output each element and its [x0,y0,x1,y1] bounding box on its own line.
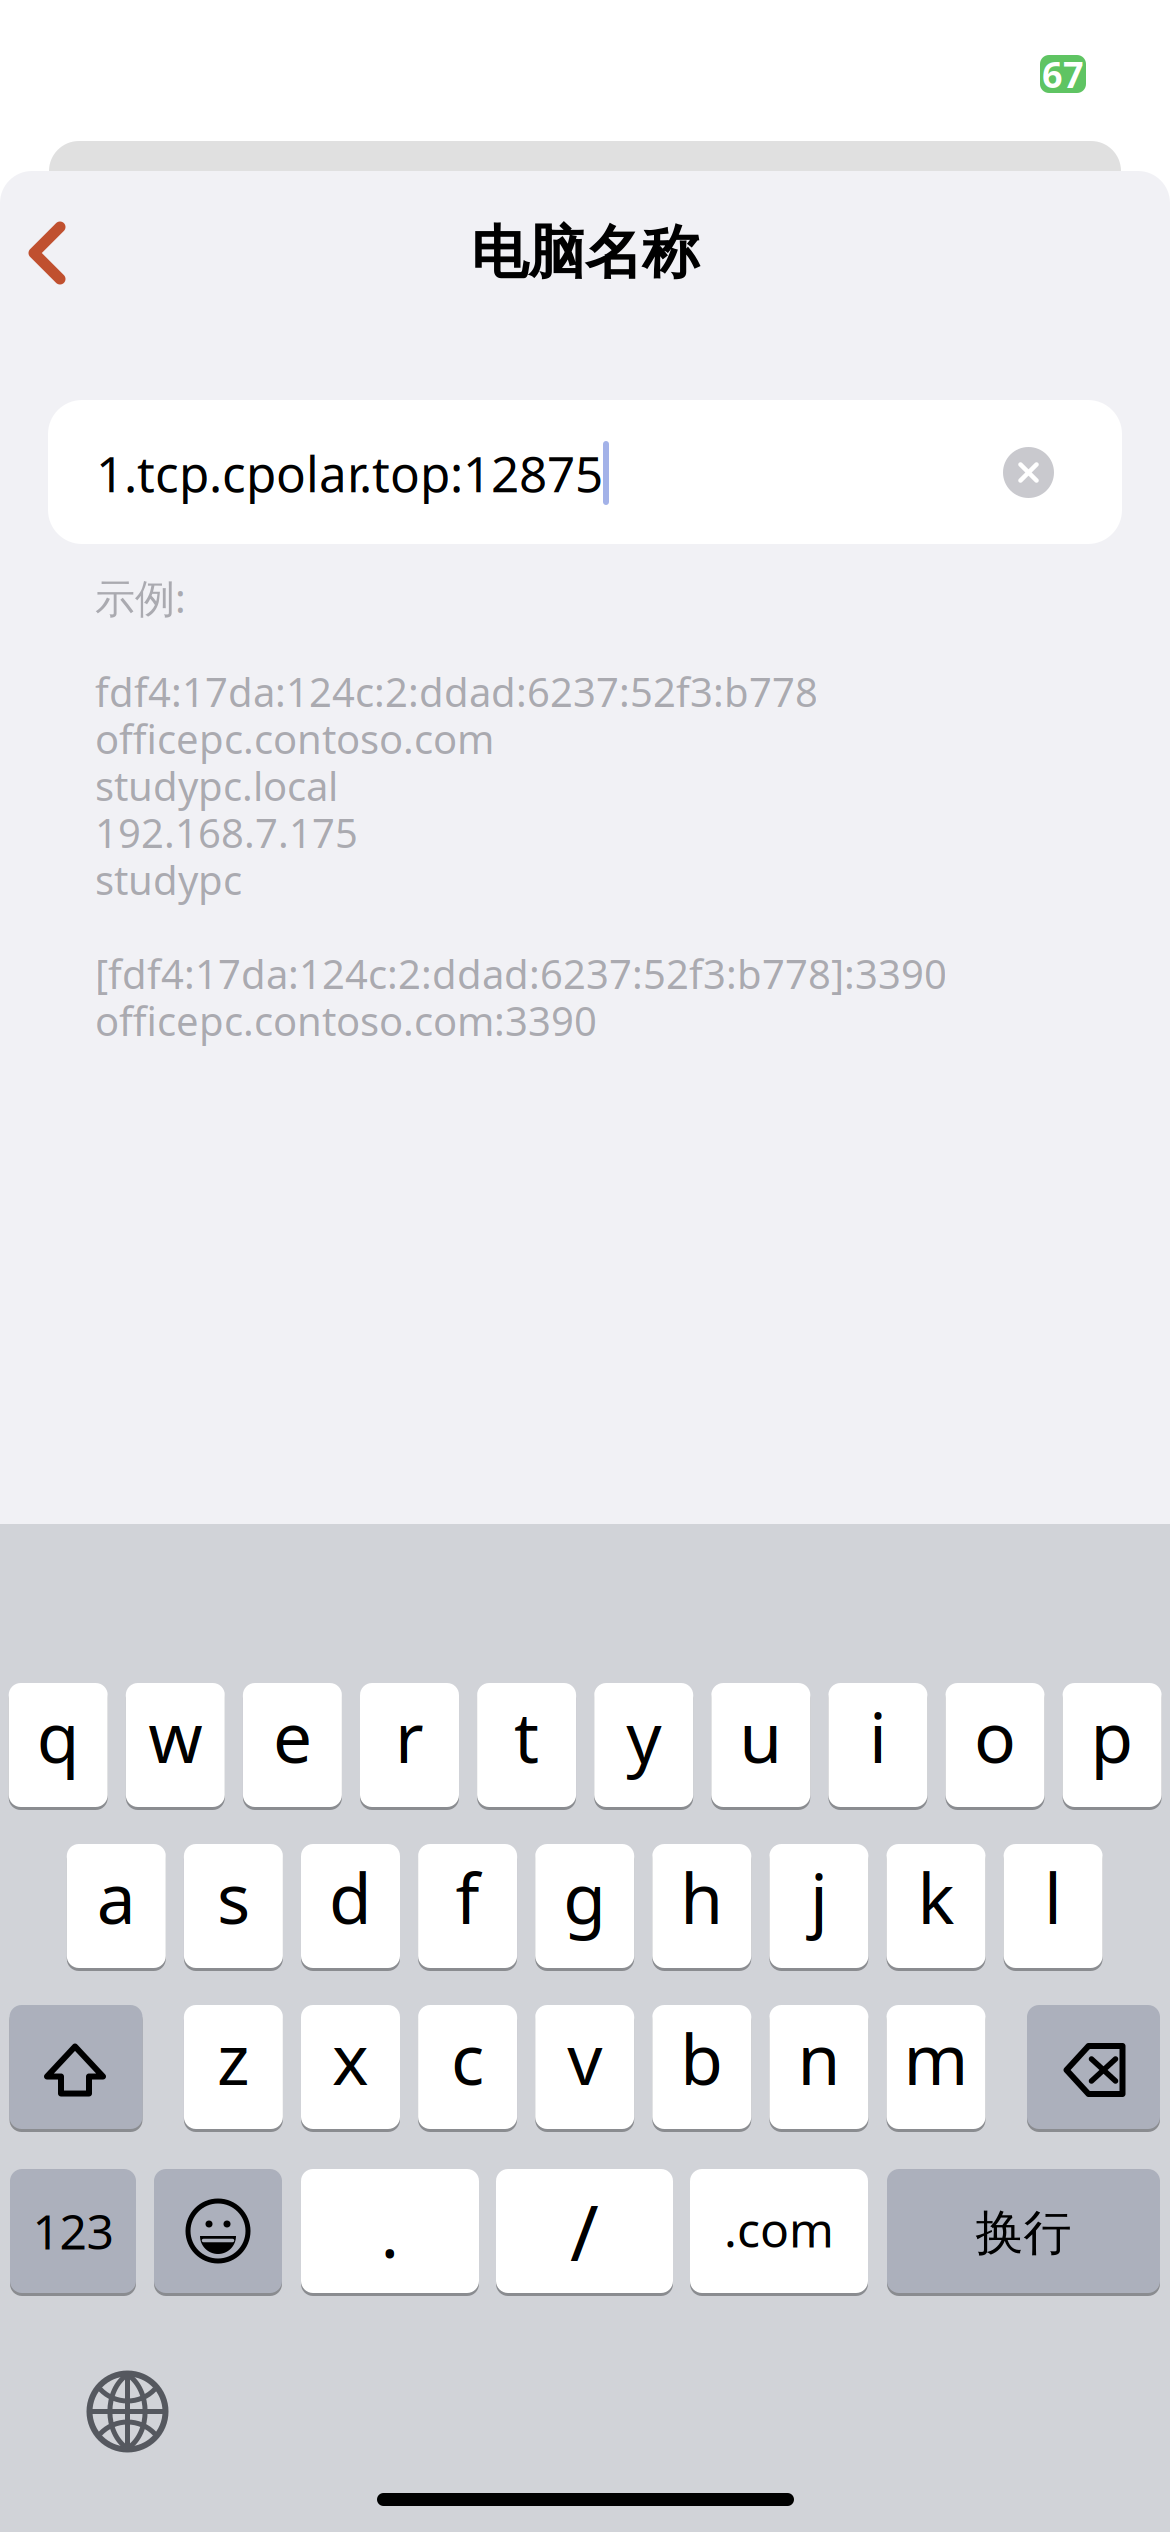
button[interactable]: g [535,1844,634,1971]
button[interactable]: Switch keyboard [88,2372,167,2451]
button[interactable]: c [418,2005,517,2132]
button[interactable]: v [535,2005,634,2132]
staticText: u [739,1690,782,1782]
button[interactable]: / [496,2169,673,2296]
button[interactable]: . [301,2169,479,2296]
staticText: j [810,1851,828,1943]
button[interactable]: 换行 [887,2169,1160,2296]
staticText: 电脑名称 [471,218,699,288]
staticText: officepc.contoso.com:3390 [95,994,597,1047]
button[interactable]: s [184,1844,283,1971]
button[interactable]: n [769,2005,868,2132]
staticText: b [680,2012,723,2104]
staticText: studypc [95,853,242,906]
staticText: c [451,2012,484,2104]
staticText: 示例: [95,571,186,624]
staticText: h [680,1851,723,1943]
staticText: d [329,1851,372,1943]
button[interactable]: y [594,1683,693,1810]
button[interactable]: b [652,2005,751,2132]
staticText: / [570,2180,599,2282]
staticText: m [903,2012,968,2104]
button[interactable]: Emoji [154,2169,282,2296]
button[interactable]: e [243,1683,342,1810]
staticText: 67 [1042,50,1084,98]
staticText: q [37,1690,80,1782]
staticText: . [380,2185,399,2277]
staticText: r [395,1690,424,1782]
button[interactable]: p [1063,1683,1162,1810]
button[interactable]: Shift [9,2005,142,2132]
button[interactable]: u [711,1683,810,1810]
staticText: s [217,1851,250,1943]
button[interactable]: i [828,1683,927,1810]
staticText: 192.168.7.175 [95,806,358,859]
staticText: fdf4:17da:124c:2:ddad:6237:52f3:b778 [95,665,818,718]
staticText: o [974,1690,1016,1782]
button[interactable]: Back [0,198,102,308]
button[interactable]: q [9,1683,108,1810]
button[interactable]: Clear text [1003,447,1054,498]
staticText: l [1044,1851,1062,1943]
staticText: a [97,1851,136,1943]
button[interactable]: a [67,1844,166,1971]
staticText: n [797,2012,840,2104]
button[interactable]: t [477,1683,576,1810]
button[interactable]: h [652,1844,751,1971]
button[interactable]: j [769,1844,868,1971]
button[interactable]: z [184,2005,283,2132]
staticText: officepc.contoso.com [95,712,494,765]
staticText: k [917,1851,954,1943]
staticText: v [567,2012,602,2104]
staticText: i [869,1690,887,1782]
staticText: p [1091,1690,1134,1782]
button[interactable]: r [360,1683,459,1810]
button[interactable]: f [418,1844,517,1971]
staticText: .com [724,2197,834,2261]
button[interactable]: w [126,1683,225,1810]
button[interactable]: m [886,2005,985,2132]
staticText: w [148,1690,202,1782]
button[interactable]: k [886,1844,985,1971]
button[interactable]: l [1004,1844,1103,1971]
staticText: 123 [32,2199,113,2263]
button[interactable]: Delete [1027,2005,1160,2132]
button[interactable]: d [301,1844,400,1971]
staticText: e [273,1690,312,1782]
button[interactable]: .com [690,2169,868,2296]
staticText: g [563,1851,606,1943]
staticText: 换行 [975,2203,1071,2262]
staticText: y [626,1690,661,1782]
staticText: f [456,1851,480,1943]
button[interactable]: o [945,1683,1044,1810]
button[interactable]: x [301,2005,400,2132]
staticText: x [332,2012,369,2104]
staticText: [fdf4:17da:124c:2:ddad:6237:52f3:b778]:3… [95,947,947,1000]
staticText: studypc.local [95,759,338,812]
staticText: 1.tcp.cpolar.top:12875 [96,440,603,506]
staticText: z [217,2012,250,2104]
staticText: t [514,1690,539,1782]
button[interactable]: 123 [10,2169,136,2296]
